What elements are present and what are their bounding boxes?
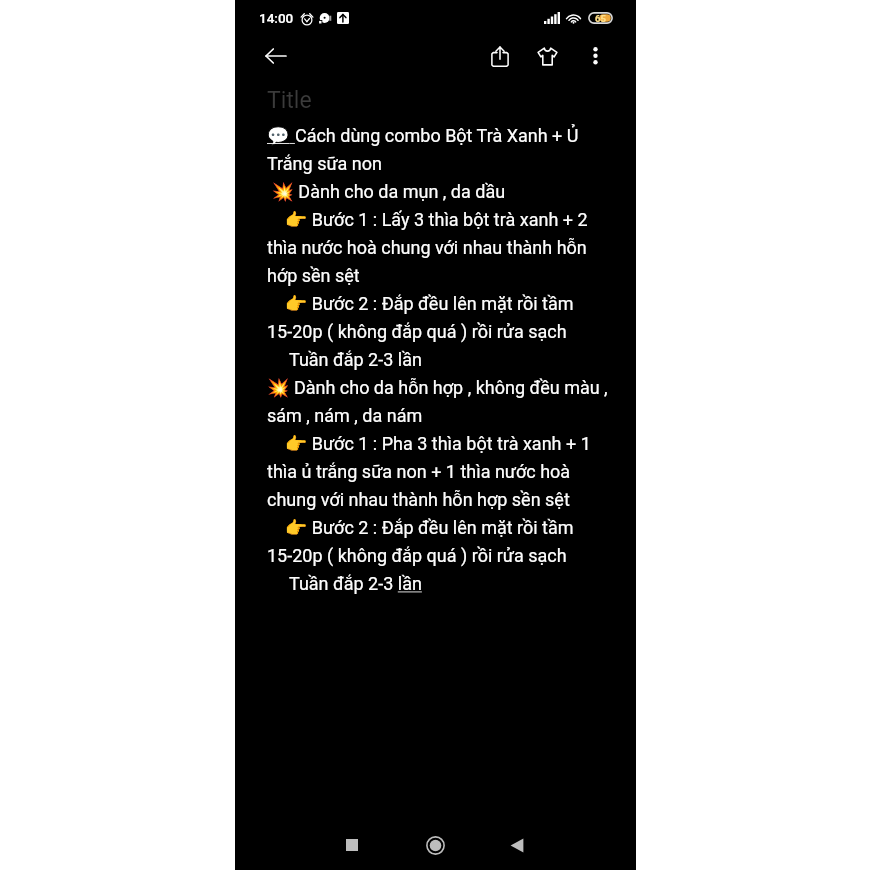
staticText: Title [267, 87, 312, 114]
staticText: 65 [595, 13, 606, 24]
staticText: 💬 Cách dùng combo Bột Trà Xanh + Ủ Trắng… [267, 125, 620, 595]
button[interactable]: Change theme [527, 38, 567, 74]
button[interactable]: Back [491, 819, 543, 870]
button[interactable]: More options [580, 41, 610, 71]
staticText: 14:00 [259, 10, 294, 26]
button[interactable]: Back [256, 38, 296, 74]
button[interactable]: Home [409, 819, 461, 870]
button[interactable]: Share [480, 38, 520, 74]
button[interactable]: Recent apps [326, 819, 378, 870]
